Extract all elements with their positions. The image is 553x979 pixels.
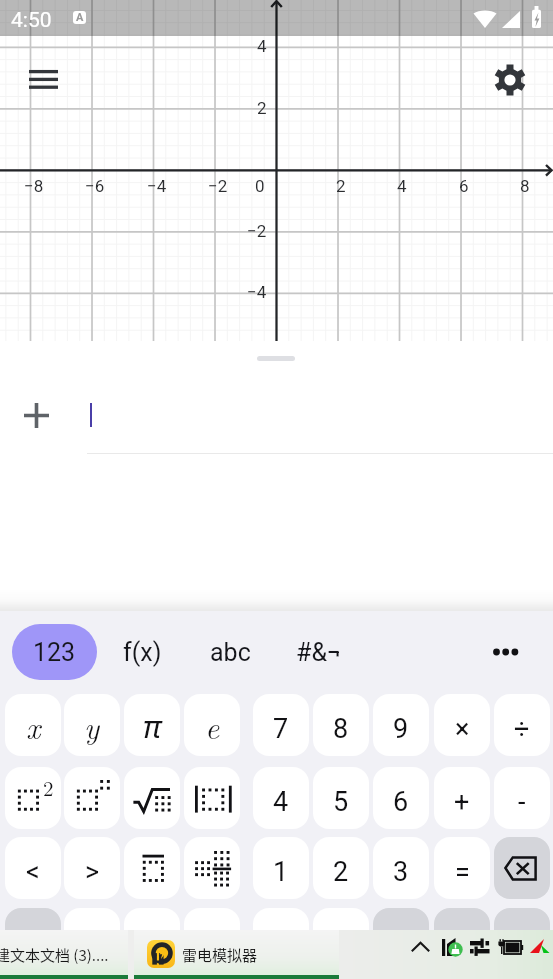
staticText: 建文本文档 (3)....: [0, 944, 109, 966]
staticText: 9: [393, 713, 409, 745]
button[interactable]: square root: [124, 767, 180, 829]
button[interactable]: Sound settings: [466, 933, 494, 961]
staticText: f(x): [123, 638, 162, 667]
button[interactable]: Menu: [22, 58, 65, 101]
button[interactable]: key: [5, 908, 61, 970]
staticText: 1: [273, 856, 289, 888]
button[interactable]: +: [434, 767, 490, 829]
button[interactable]: abc: [188, 624, 273, 680]
staticText: A: [76, 11, 84, 24]
button[interactable]: LDPlayer: [526, 933, 552, 959]
button[interactable]: backspace: [494, 837, 550, 899]
staticText: 2: [333, 856, 349, 888]
button[interactable]: <: [5, 837, 61, 899]
button[interactable]: #&¬: [276, 624, 361, 680]
staticText: 0: [255, 176, 265, 196]
button[interactable]: Battery: [496, 933, 524, 961]
staticText: >: [85, 856, 100, 888]
button[interactable]: ×: [434, 694, 490, 756]
button[interactable]: >: [64, 837, 120, 899]
staticText: 7: [273, 713, 289, 745]
button[interactable]: 5: [313, 767, 369, 829]
button[interactable]: Settings: [489, 59, 531, 101]
button[interactable]: 3: [373, 837, 429, 899]
button[interactable]: key: [494, 908, 550, 970]
staticText: −2: [247, 221, 267, 241]
button[interactable]: π: [124, 694, 180, 756]
button[interactable]: 雷电模拟器: [134, 930, 339, 979]
staticText: −6: [85, 176, 105, 196]
staticText: 6: [459, 176, 469, 196]
button[interactable]: Add expression: [14, 393, 58, 437]
staticText: y: [84, 704, 100, 748]
button[interactable]: -: [494, 767, 550, 829]
staticText: 雷电模拟器: [182, 944, 258, 966]
staticText: 4: [397, 176, 407, 196]
button[interactable]: power: [64, 767, 120, 829]
button[interactable]: key: [313, 908, 369, 970]
button[interactable]: 6: [373, 767, 429, 829]
staticText: 3: [393, 856, 409, 888]
button[interactable]: x: [5, 694, 61, 756]
button[interactable]: f(x): [100, 624, 185, 680]
button[interactable]: e: [184, 694, 240, 756]
staticText: 5: [333, 786, 349, 818]
button[interactable]: More options: [482, 625, 534, 679]
staticText: π: [143, 705, 162, 747]
staticText: -: [518, 786, 526, 818]
staticText: −8: [24, 176, 44, 196]
staticText: e: [205, 704, 220, 748]
staticText: 2: [336, 176, 346, 196]
staticText: 2: [257, 98, 267, 118]
staticText: 2: [43, 772, 54, 802]
button[interactable]: Task manager: [439, 933, 467, 961]
staticText: 4: [273, 786, 289, 818]
staticText: +: [454, 786, 470, 818]
staticText: −2: [208, 176, 228, 196]
staticText: abc: [210, 638, 251, 667]
button[interactable]: key: [373, 908, 429, 970]
staticText: −4: [247, 282, 267, 302]
button[interactable]: 7: [253, 694, 309, 756]
button[interactable]: 9: [373, 694, 429, 756]
button[interactable]: 4: [253, 767, 309, 829]
staticText: <: [26, 856, 40, 888]
staticText: 123: [33, 638, 76, 667]
button[interactable]: absolute value: [184, 767, 240, 829]
staticText: 4: [257, 36, 267, 56]
staticText: 8: [520, 176, 530, 196]
button[interactable]: key: [124, 908, 180, 970]
button[interactable]: key: [434, 908, 490, 970]
button[interactable]: key: [184, 908, 240, 970]
staticText: 6: [393, 786, 409, 818]
staticText: ÷: [514, 713, 530, 745]
staticText: x: [26, 704, 41, 748]
button[interactable]: 8: [313, 694, 369, 756]
button[interactable]: 建文本文档 (3)....: [0, 930, 128, 979]
button[interactable]: key: [64, 908, 120, 970]
staticText: #&¬: [296, 638, 341, 667]
button[interactable]: fraction: [184, 837, 240, 899]
button[interactable]: square: [5, 767, 61, 829]
button[interactable]: 1: [253, 837, 309, 899]
staticText: −4: [147, 176, 167, 196]
button[interactable]: key: [253, 908, 309, 970]
button[interactable]: y: [64, 694, 120, 756]
staticText: 4:50: [11, 8, 52, 33]
button[interactable]: 2: [313, 837, 369, 899]
button[interactable]: ÷: [494, 694, 550, 756]
button[interactable]: =: [434, 837, 490, 899]
button[interactable]: Show hidden icons: [407, 934, 433, 960]
button[interactable]: 123: [12, 624, 97, 680]
staticText: =: [455, 856, 470, 888]
staticText: 8: [333, 713, 349, 745]
button[interactable]: nth root: [124, 837, 180, 899]
staticText: ×: [455, 713, 470, 745]
